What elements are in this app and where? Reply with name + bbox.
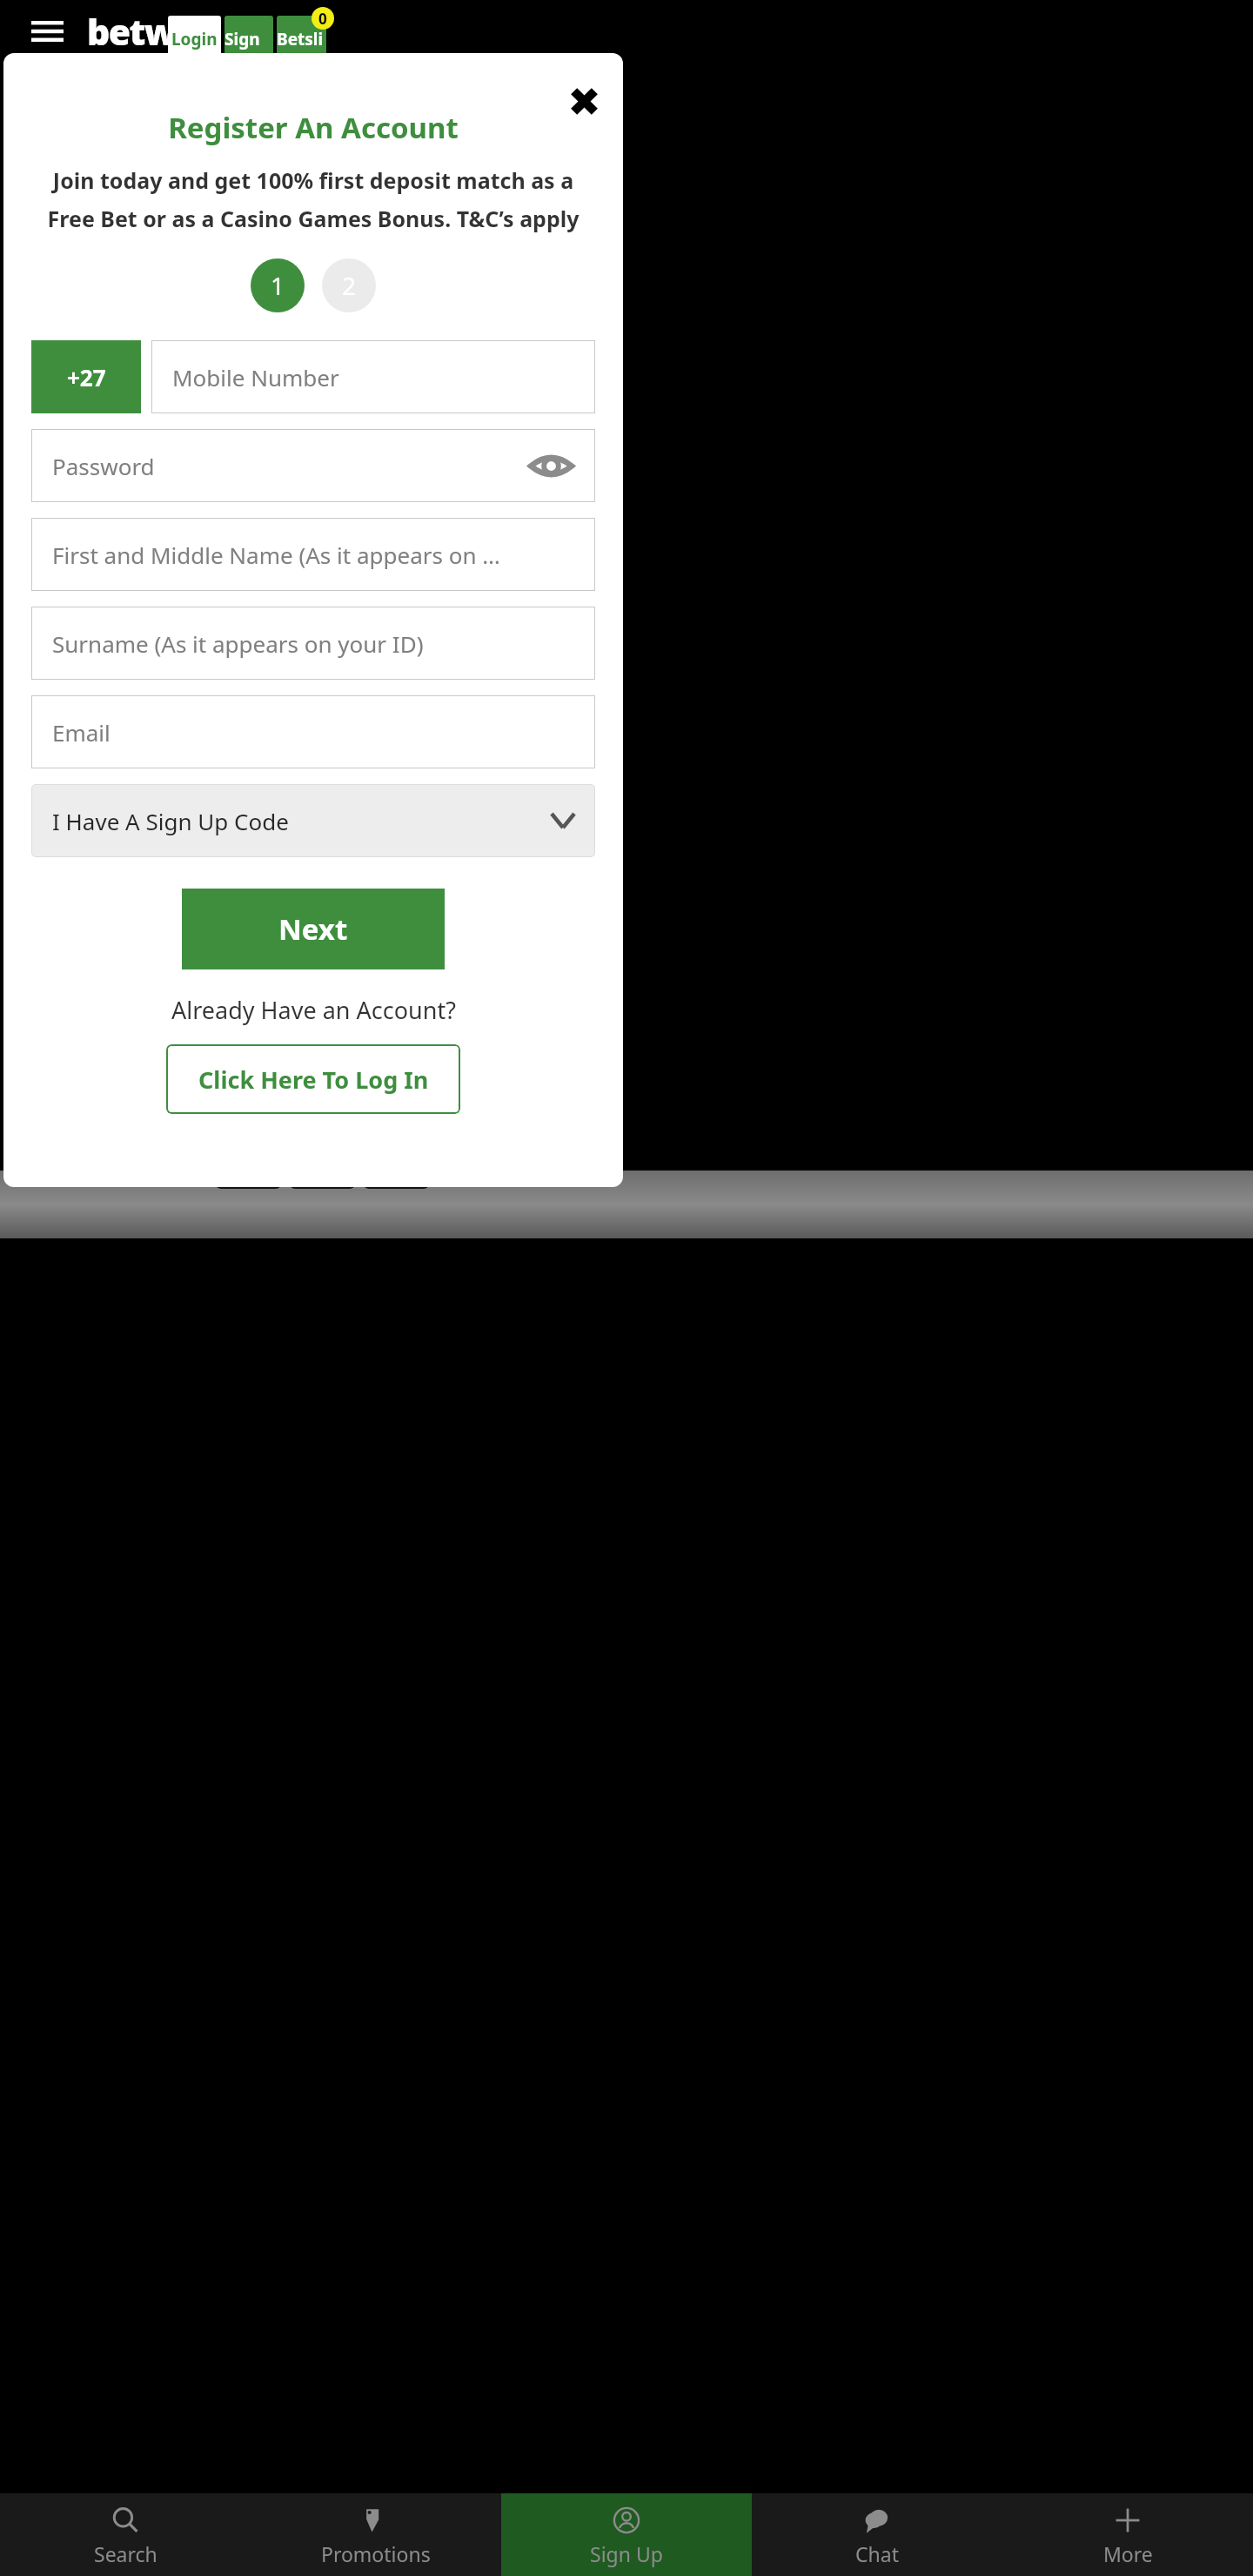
staticText: Click Here To Log In [198,1063,429,1096]
button[interactable]: Promotions [251,2493,501,2576]
button[interactable]: Email [31,695,595,768]
staticText: Password [52,451,155,481]
button[interactable]: Sign Up [501,2493,752,2576]
staticText: Login [171,28,218,50]
button[interactable]: First and Middle Name (As it appears on … [31,518,595,591]
button[interactable]: Show password [526,440,576,491]
button[interactable]: Chat [752,2493,1002,2576]
button[interactable]: 2 [322,258,376,312]
staticText: Join today and get 100% first deposit ma… [33,165,593,234]
staticText: Next [278,909,348,949]
button[interactable]: Login [168,16,221,56]
staticText: Sign Up [590,2540,663,2567]
staticText: 0 [318,9,327,29]
button[interactable]: Surname (As it appears on your ID) [31,607,595,680]
staticText: +27 [67,362,106,392]
staticText: Sign Up [224,28,273,50]
staticText: Promotions [321,2540,431,2567]
staticText: Mobile Number [172,362,339,392]
button[interactable]: +27 [31,340,141,413]
staticText: Search [94,2540,157,2567]
staticText: I Have A Sign Up Code [52,806,552,836]
staticText: betway [87,7,217,56]
staticText: Email [52,717,111,748]
button[interactable]: I Have A Sign Up Code [31,784,595,857]
button[interactable]: Click Here To Log In [166,1044,460,1114]
staticText: Already Have an Account? [171,994,456,1026]
button[interactable]: Close [560,77,607,124]
button[interactable]: Menu [23,12,71,50]
staticText: Surname (As it appears on your ID) [52,628,424,659]
staticText: Betslip [277,28,326,50]
staticText: More [1103,2540,1153,2567]
button[interactable]: Mobile Number [151,340,595,413]
staticText: First and Middle Name (As it appears on … [52,540,500,570]
button[interactable]: Next [182,889,445,969]
button[interactable]: Sign Up [224,16,273,56]
button[interactable]: 1 [251,258,305,312]
staticText: 1 [271,269,285,302]
staticText: Chat [855,2540,899,2567]
staticText: Register An Account [168,108,459,147]
staticText: 2 [342,269,357,302]
button[interactable]: Password [31,429,595,502]
button[interactable]: More [1002,2493,1253,2576]
button[interactable]: Betslip [277,16,326,56]
button[interactable]: Search [0,2493,251,2576]
